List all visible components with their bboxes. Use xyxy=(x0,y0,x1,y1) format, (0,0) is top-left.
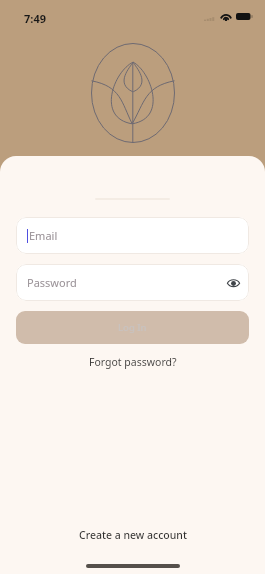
staticText: Create a new account xyxy=(79,528,187,542)
staticText: Forgot password? xyxy=(89,355,177,369)
button[interactable]: Email xyxy=(16,217,249,254)
staticText: Email xyxy=(29,228,58,243)
button[interactable]: Log In xyxy=(16,311,249,344)
button[interactable]: Password xyxy=(16,264,249,301)
staticText: 7:49 xyxy=(24,11,46,26)
button[interactable]: Show password xyxy=(223,273,243,293)
button[interactable]: Forgot password? xyxy=(0,351,265,373)
button[interactable]: Create a new account xyxy=(0,522,265,548)
staticText: Log In xyxy=(118,321,147,334)
staticText: Password xyxy=(27,275,223,290)
